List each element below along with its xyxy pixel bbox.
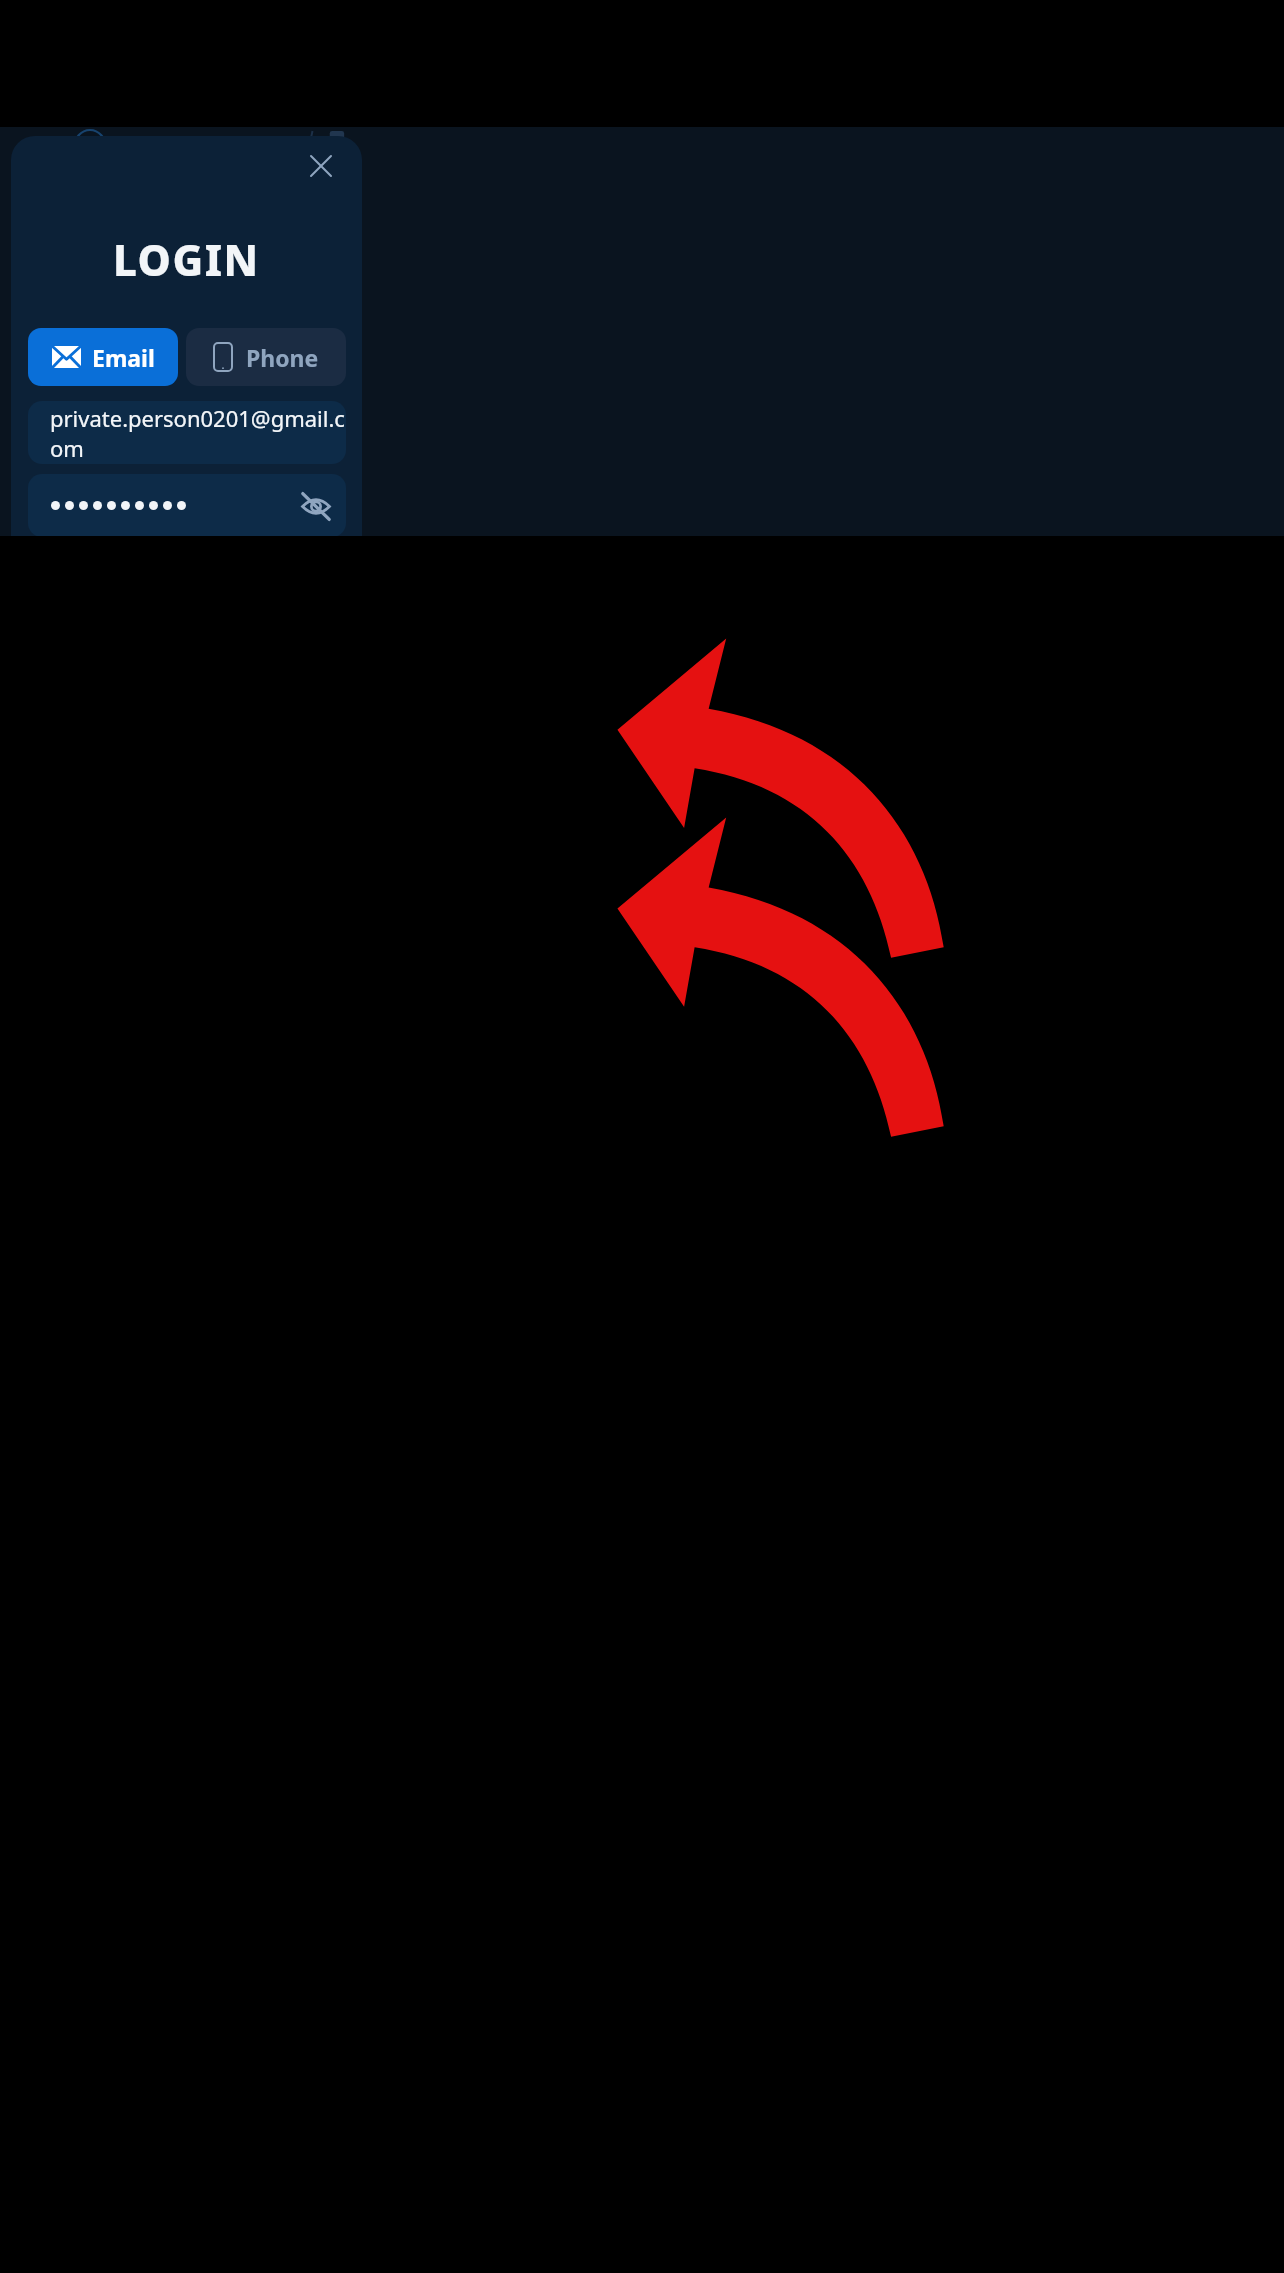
staticText: private.person0201@gmail.com (50, 403, 346, 463)
staticText: Email (92, 342, 155, 373)
button[interactable]: Show password (292, 482, 340, 530)
button[interactable]: private.person0201@gmail.com (28, 401, 346, 464)
button[interactable]: Phone (186, 328, 346, 386)
staticText: LOGIN (113, 231, 260, 288)
button[interactable]: Show password (28, 474, 346, 536)
button[interactable]: Email (28, 328, 178, 386)
staticText: Phone (246, 342, 319, 373)
button[interactable]: Close (297, 142, 345, 190)
